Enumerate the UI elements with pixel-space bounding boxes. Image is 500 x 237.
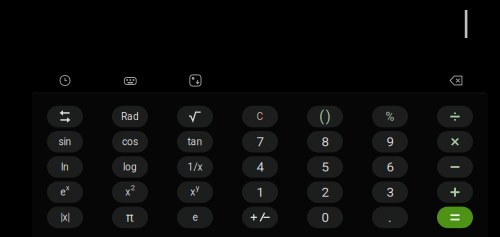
staticText: 9 <box>386 134 393 149</box>
button[interactable] <box>242 207 278 228</box>
button[interactable]: 2 <box>307 181 343 203</box>
button[interactable]: ( <box>307 106 343 127</box>
staticText: e <box>192 211 197 223</box>
button[interactable] <box>437 106 473 127</box>
staticText: 1 <box>256 184 263 200</box>
button[interactable]: 4 <box>242 156 278 178</box>
staticText: 2 <box>321 184 328 200</box>
staticText: 7 <box>256 134 263 149</box>
button[interactable] <box>177 106 213 127</box>
staticText: Rad <box>121 111 139 122</box>
button[interactable]: 8 <box>307 131 343 152</box>
button[interactable]: History <box>55 70 75 90</box>
button[interactable]: e <box>47 181 83 203</box>
button[interactable] <box>437 156 473 178</box>
staticText: y <box>196 183 200 192</box>
staticText: C <box>256 111 263 122</box>
staticText: 0 <box>321 209 328 225</box>
button[interactable] <box>437 131 473 152</box>
staticText: 3 <box>386 184 393 200</box>
button[interactable]: 0 <box>307 207 343 228</box>
button[interactable]: 9 <box>372 131 408 152</box>
staticText: 8 <box>321 134 328 149</box>
button[interactable]: Rad <box>112 106 148 127</box>
staticText: 6 <box>386 159 393 175</box>
button[interactable]: % <box>372 106 408 127</box>
button[interactable] <box>437 181 473 203</box>
staticText: 2 <box>131 183 135 192</box>
staticText: x <box>66 183 70 192</box>
staticText: x <box>125 186 130 198</box>
button[interactable]: 7 <box>242 131 278 152</box>
staticText: π <box>126 210 134 225</box>
staticText: log <box>123 161 137 173</box>
staticText: % <box>385 109 394 124</box>
button[interactable]: Backspace <box>446 70 466 90</box>
button[interactable]: C <box>242 106 278 127</box>
staticText: ln <box>61 161 69 173</box>
staticText: 5 <box>321 159 328 175</box>
button[interactable]: Unit converter <box>185 70 205 90</box>
button[interactable]: 1/x <box>177 156 213 178</box>
button[interactable]: ln <box>47 156 83 178</box>
staticText: tan <box>187 136 202 148</box>
button[interactable]: 6 <box>372 156 408 178</box>
staticText: sin <box>58 136 71 148</box>
button[interactable]: x <box>112 181 148 203</box>
button[interactable]: cos <box>112 131 148 152</box>
button[interactable]: . <box>372 207 408 228</box>
button[interactable]: π <box>112 207 148 228</box>
staticText: 1/x <box>187 161 202 173</box>
staticText: ) <box>326 108 331 125</box>
button[interactable] <box>437 207 473 228</box>
button[interactable]: 1 <box>242 181 278 203</box>
button[interactable] <box>47 106 83 127</box>
button[interactable]: 3 <box>372 181 408 203</box>
staticText: . <box>388 209 392 225</box>
button[interactable]: Keyboard <box>120 71 140 91</box>
staticText: cos <box>122 136 138 148</box>
button[interactable]: sin <box>47 131 83 152</box>
button[interactable]: 5 <box>307 156 343 178</box>
button[interactable]: x <box>177 181 213 203</box>
staticText: x <box>190 186 195 198</box>
staticText: |x| <box>60 211 69 223</box>
staticText: ( <box>319 108 324 125</box>
button[interactable]: |x| <box>47 207 83 228</box>
button[interactable]: tan <box>177 131 213 152</box>
button[interactable]: log <box>112 156 148 178</box>
staticText: e <box>60 186 65 198</box>
button[interactable]: e <box>177 207 213 228</box>
staticText: 4 <box>256 159 263 175</box>
